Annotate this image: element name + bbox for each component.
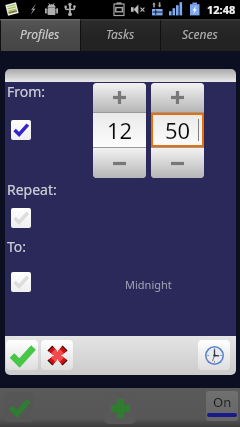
staticText: To:	[7, 237, 27, 256]
button[interactable]: 12	[93, 113, 146, 147]
button[interactable]: Cancel	[41, 340, 73, 370]
button[interactable]: 50	[151, 113, 204, 147]
staticText: From:	[7, 82, 46, 101]
button[interactable]: Tasks	[80, 19, 160, 51]
button[interactable]: Clock	[198, 340, 230, 370]
button[interactable]: Profiles	[0, 19, 80, 51]
staticText: Scenes	[182, 26, 218, 42]
button[interactable]: Add	[104, 392, 136, 424]
button[interactable]: On	[206, 391, 238, 421]
button[interactable]: Checkbox	[11, 208, 31, 228]
button[interactable]: Accept	[6, 340, 38, 370]
button[interactable]: Checkbox	[11, 272, 31, 292]
button[interactable]: Checkbox	[11, 120, 31, 140]
staticText: 50	[165, 115, 191, 145]
button[interactable]: Decrement	[151, 148, 204, 178]
button[interactable]: Scenes	[160, 19, 240, 51]
staticText: Tasks	[106, 26, 135, 42]
button[interactable]: Increment	[151, 83, 204, 112]
staticText: Profiles	[20, 26, 60, 42]
staticText: 12:48	[207, 2, 236, 17]
staticText: 12	[107, 115, 133, 145]
staticText: Repeat:	[7, 180, 57, 199]
staticText: On	[213, 393, 232, 411]
button[interactable]: Decrement	[93, 148, 146, 178]
staticText: Midnight	[125, 277, 172, 292]
button[interactable]: Increment	[93, 83, 146, 112]
button[interactable]: Apply	[4, 392, 34, 422]
